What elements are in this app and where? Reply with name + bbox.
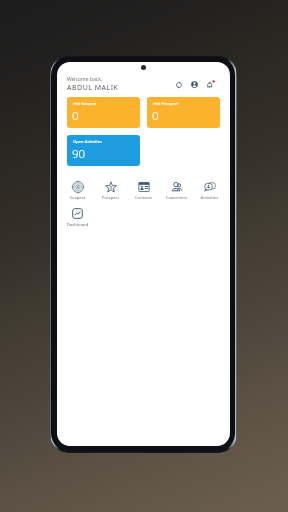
button[interactable]: Account [188, 78, 201, 91]
staticText: 0 [152, 108, 159, 124]
staticText: Customers [160, 195, 193, 201]
staticText: ABDUL MALIK [67, 83, 119, 93]
button[interactable]: Activities [193, 178, 226, 201]
staticText: 90 [72, 146, 86, 162]
button[interactable]: Notifications [204, 78, 217, 91]
button[interactable]: Hot Suspect [67, 97, 140, 128]
button[interactable]: Dashboard [61, 205, 94, 228]
button[interactable]: Customers [160, 178, 193, 201]
staticText: Welcome back, [67, 76, 103, 83]
button[interactable]: Contacts [127, 178, 160, 201]
button[interactable]: Prospect [94, 178, 127, 201]
staticText: Activities [193, 195, 226, 201]
button[interactable]: Open Activities [67, 135, 140, 166]
staticText: Hot Prospect [153, 101, 179, 107]
staticText: Suspect [61, 195, 94, 201]
button[interactable]: Refresh [172, 78, 185, 91]
staticText: Contacts [127, 195, 160, 201]
staticText: 0 [72, 108, 79, 124]
staticText: Dashboard [61, 222, 94, 228]
staticText: Hot Suspect [73, 101, 97, 107]
button[interactable]: Hot Prospect [147, 97, 220, 128]
button[interactable]: Suspect [61, 178, 94, 201]
staticText: Prospect [94, 195, 127, 201]
staticText: Open Activities [73, 139, 103, 145]
